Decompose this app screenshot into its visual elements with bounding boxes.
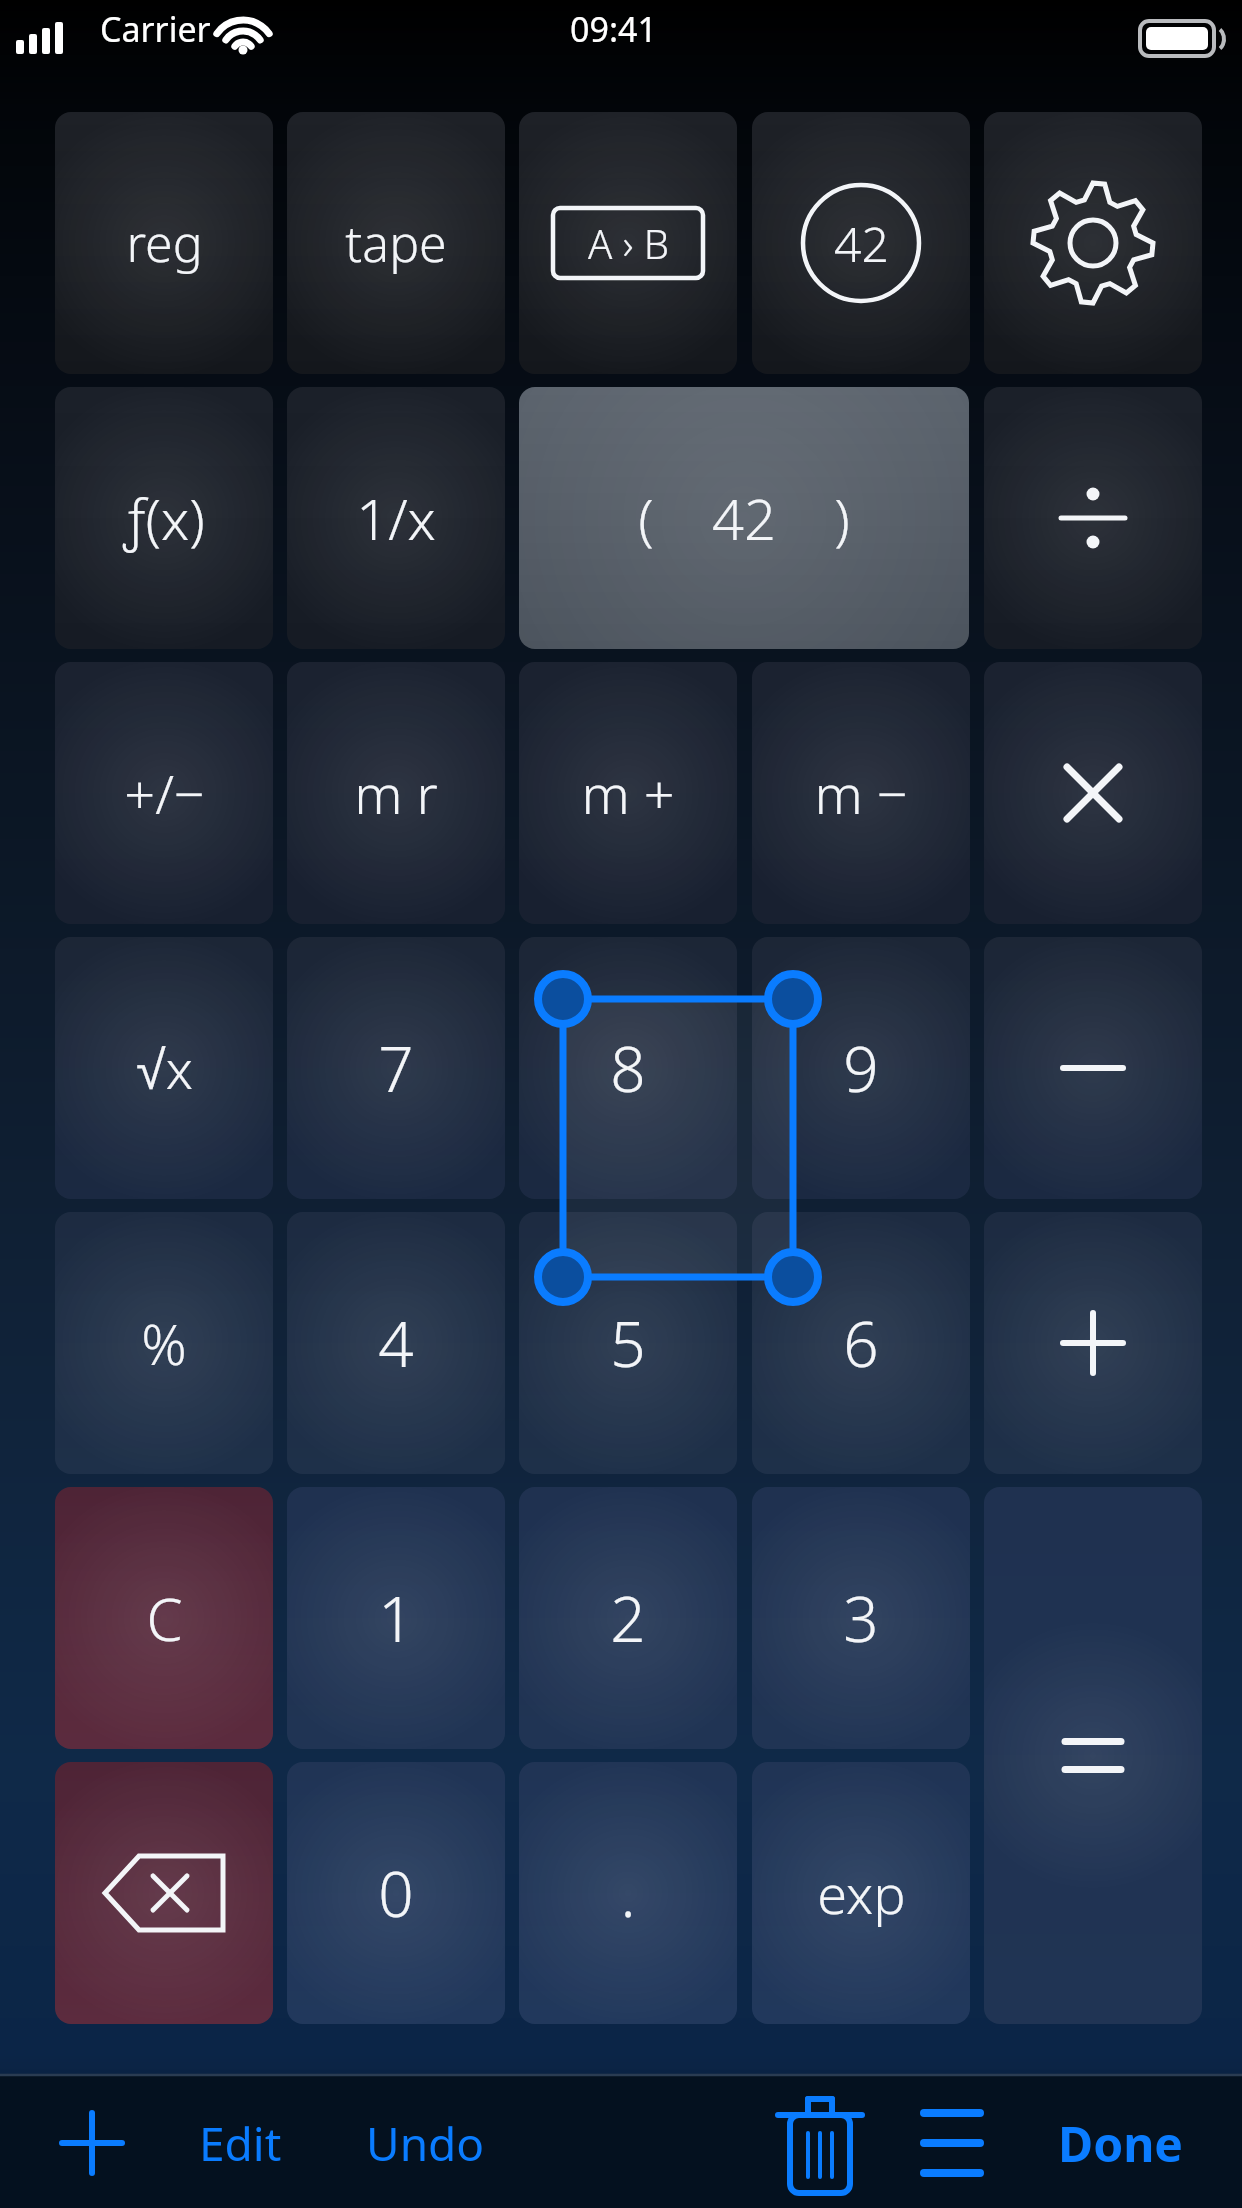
- staticText: tape: [345, 209, 447, 277]
- staticText: Carrier: [100, 6, 211, 52]
- staticText: 2: [610, 1576, 646, 1660]
- button[interactable]: Value 42: [752, 112, 970, 374]
- button[interactable]: ( 42 ): [519, 387, 969, 649]
- staticText: %: [141, 1305, 187, 1381]
- button[interactable]: Plus: [984, 1212, 1202, 1474]
- button[interactable]: 4: [287, 1212, 505, 1474]
- button[interactable]: C: [55, 1487, 273, 1749]
- button[interactable]: √x: [55, 937, 273, 1199]
- button[interactable]: +/−: [55, 662, 273, 924]
- button[interactable]: Delete: [768, 2093, 872, 2193]
- button[interactable]: exp: [752, 1762, 970, 2024]
- staticText: 8: [610, 1026, 646, 1110]
- staticText: m +: [581, 756, 675, 830]
- staticText: 5: [610, 1301, 646, 1385]
- button[interactable]: Menu: [902, 2093, 1002, 2193]
- button[interactable]: reg: [55, 112, 273, 374]
- button[interactable]: tape: [287, 112, 505, 374]
- button[interactable]: ƒ(x): [55, 387, 273, 649]
- button[interactable]: 7: [287, 937, 505, 1199]
- staticText: √x: [136, 1031, 193, 1105]
- staticText: reg: [126, 209, 203, 277]
- staticText: 1: [378, 1576, 414, 1660]
- staticText: m r: [354, 756, 438, 830]
- staticText: exp: [817, 1856, 906, 1930]
- button[interactable]: Edit: [175, 2093, 305, 2193]
- button[interactable]: .: [519, 1762, 737, 2024]
- button[interactable]: Settings: [984, 112, 1202, 374]
- button[interactable]: Backspace: [55, 1762, 273, 2024]
- staticText: 09:41: [570, 6, 657, 52]
- button[interactable]: 8: [519, 937, 737, 1199]
- staticText: m −: [814, 756, 908, 830]
- button[interactable]: Undo: [330, 2093, 520, 2193]
- staticText: 7: [378, 1026, 414, 1110]
- button[interactable]: m r: [287, 662, 505, 924]
- staticText: Edit: [199, 2112, 282, 2175]
- staticText: 0: [378, 1851, 414, 1935]
- staticText: ( 42 ): [638, 480, 850, 556]
- button[interactable]: Minus: [984, 937, 1202, 1199]
- staticText: .: [620, 1851, 636, 1935]
- staticText: +/−: [124, 756, 205, 830]
- button[interactable]: m +: [519, 662, 737, 924]
- button[interactable]: 9: [752, 937, 970, 1199]
- button[interactable]: 6: [752, 1212, 970, 1474]
- button[interactable]: %: [55, 1212, 273, 1474]
- button[interactable]: 1/x: [287, 387, 505, 649]
- button[interactable]: Divide: [984, 387, 1202, 649]
- staticText: Undo: [366, 2112, 485, 2175]
- button[interactable]: Add: [42, 2093, 142, 2193]
- staticText: ƒ(x): [123, 480, 205, 556]
- staticText: 9: [843, 1026, 879, 1110]
- staticText: A › B: [588, 216, 669, 270]
- button[interactable]: m −: [752, 662, 970, 924]
- staticText: 6: [843, 1301, 879, 1385]
- button[interactable]: 5: [519, 1212, 737, 1474]
- button[interactable]: Done: [1030, 2093, 1210, 2193]
- staticText: 4: [378, 1301, 414, 1385]
- button[interactable]: 0: [287, 1762, 505, 2024]
- staticText: 1/x: [356, 480, 436, 556]
- staticText: 3: [843, 1576, 879, 1660]
- staticText: Done: [1058, 2111, 1183, 2176]
- button[interactable]: Equals: [984, 1487, 1202, 2024]
- button[interactable]: Multiply: [984, 662, 1202, 924]
- button[interactable]: 2: [519, 1487, 737, 1749]
- staticText: C: [146, 1579, 183, 1658]
- button[interactable]: 1: [287, 1487, 505, 1749]
- button[interactable]: Swap A and B: [519, 112, 737, 374]
- staticText: 42: [834, 211, 889, 276]
- button[interactable]: 3: [752, 1487, 970, 1749]
